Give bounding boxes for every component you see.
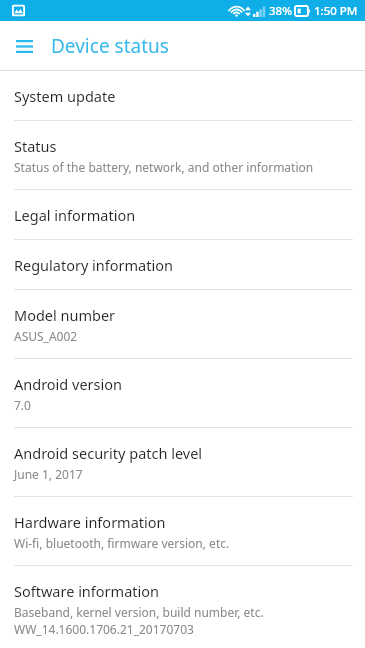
button[interactable]: Hardware information	[0, 497, 365, 565]
staticText: Android security patch level	[14, 443, 203, 463]
staticText: Android version	[14, 374, 122, 394]
staticText: June 1, 2017	[14, 466, 83, 482]
staticText: Software information	[14, 581, 159, 601]
staticText: Regulatory information	[14, 255, 173, 275]
button[interactable]: System update	[0, 71, 365, 120]
button[interactable]: Android security patch level	[0, 428, 365, 496]
staticText: System update	[14, 86, 116, 106]
button[interactable]: Model number	[0, 290, 365, 358]
staticText: 1:50 PM	[314, 3, 358, 19]
staticText: Model number	[14, 305, 116, 325]
staticText: Wi-fi, bluetooth, firmware version, etc.	[14, 535, 230, 551]
staticText: Device status	[51, 33, 169, 59]
staticText: 38%	[269, 3, 292, 19]
staticText: Status	[14, 136, 57, 156]
staticText: WW_14.1600.1706.21_20170703	[14, 621, 194, 637]
button[interactable]: Android version	[0, 359, 365, 427]
staticText: Status of the battery, network, and othe…	[14, 159, 314, 175]
button[interactable]: Status	[0, 121, 365, 189]
staticText: Legal information	[14, 205, 136, 225]
staticText: 7.0	[14, 397, 31, 413]
button[interactable]: Regulatory information	[0, 240, 365, 289]
button[interactable]: Open navigation drawer	[8, 30, 40, 62]
button[interactable]: Legal information	[0, 190, 365, 239]
staticText: ASUS_A002	[14, 328, 78, 344]
button[interactable]: Software information	[0, 566, 365, 648]
staticText: Hardware information	[14, 512, 166, 532]
staticText: Baseband, kernel version, build number, …	[14, 604, 264, 620]
